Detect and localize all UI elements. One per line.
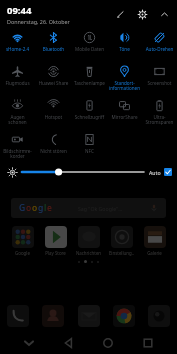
staticText: Mobile Daten [72,46,107,52]
staticText: 09:44 [7,4,32,17]
button[interactable]: Bildschirmre- korder [0,130,35,160]
button[interactable]: Hide [19,333,39,353]
button[interactable]: Auto-Drehen [142,28,177,52]
staticText: Flugmodus [0,80,35,86]
staticText: Auto-Drehen [142,46,177,52]
button[interactable]: Play Store [39,226,72,256]
button[interactable]: Nachrichten [72,226,105,256]
staticText: G [19,202,26,214]
staticText: Einstellung.. [105,250,138,256]
button[interactable]: Screenshot [142,62,177,86]
staticText: Huawei Share [36,80,71,86]
button[interactable]: Ultra- Stromsparen [142,96,177,126]
button[interactable]: Einstellung.. [105,226,138,256]
button[interactable]: Schnellzugriff [72,96,107,120]
staticText: Screenshot [142,80,177,86]
staticText: Bildschirmre- korder [0,148,35,160]
staticText: Donnerstag, 26. Oktober [7,18,70,25]
button[interactable]: Auto [149,168,172,176]
button[interactable]: Email [78,305,100,327]
button[interactable]: Settings [136,8,149,21]
staticText: Schnellzugriff [72,114,107,120]
staticText: Augen schonen [0,114,35,126]
button[interactable]: Google [6,226,39,256]
staticText: Auto [149,169,161,176]
button[interactable]: Back [59,333,79,353]
staticText: Hotspot [36,114,71,120]
staticText: MirrorShare [107,114,142,120]
staticText: o [26,202,32,214]
button[interactable]: MirrorShare [107,96,142,120]
button[interactable]: Taschenlampe [72,62,107,86]
button[interactable]: Mobile Daten [72,28,107,52]
button[interactable]: Collapse [158,8,171,21]
button[interactable]: Contacts [42,305,64,327]
staticText: Google [6,250,39,256]
button[interactable]: sHome-2.4 [0,28,35,52]
button[interactable]: G [11,198,166,218]
button[interactable]: Augen schonen [0,96,35,126]
other: Brightness [7,167,18,178]
button[interactable]: Galerie [138,226,171,256]
staticText: NFC [72,148,107,154]
button[interactable]: Recents [138,333,158,353]
button[interactable]: Huawei Share [36,62,71,86]
button[interactable]: Camera [148,305,170,327]
staticText: Bluetooth [36,46,71,52]
button[interactable]: NFC [72,130,107,154]
staticText: Play Store [39,250,72,256]
button[interactable] [22,166,144,178]
button[interactable]: Phone [7,305,29,327]
button[interactable]: Töne [107,28,142,52]
staticText: Galerie [138,250,171,256]
button[interactable]: Home [98,333,118,353]
staticText: sHome-2.4 [0,46,35,52]
button[interactable]: Standort- informationen [107,62,142,92]
button[interactable]: Hotspot [36,96,71,120]
button[interactable]: Bluetooth [36,28,71,52]
staticText: Standort- informationen [107,80,142,92]
staticText: Töne [107,46,142,52]
staticText: l [44,202,47,214]
staticText: Sag "Ok Google"... [78,205,123,212]
button[interactable]: Edit [114,8,127,21]
staticText: o [32,202,38,214]
staticText: Nicht stören [36,148,71,154]
staticText: Taschenlampe [72,80,107,86]
staticText: g [38,202,44,214]
button[interactable]: Nicht stören [36,130,71,154]
staticText: e [47,202,52,214]
staticText: Ultra- Stromsparen [142,114,177,126]
staticText: Nachrichten [72,250,105,256]
button[interactable]: Flugmodus [0,62,35,86]
other: Voice search [150,204,158,212]
button[interactable]: Chrome [113,305,135,327]
